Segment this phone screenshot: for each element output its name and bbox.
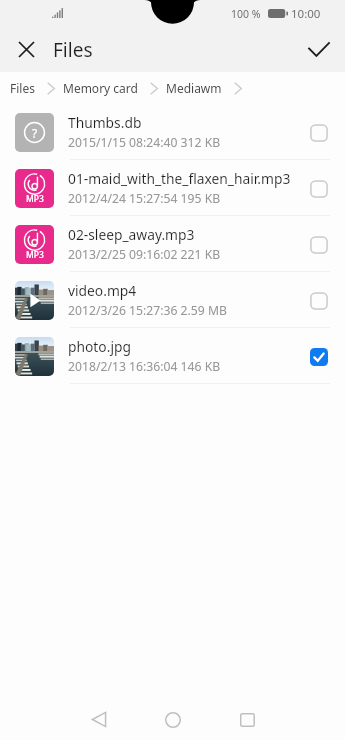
staticText: 2012/4/24 15:27:54 195 KB (68, 190, 221, 207)
staticText: 2018/2/13 16:36:04 146 KB (68, 358, 221, 375)
staticText: 2015/1/15 08:24:40 312 KB (68, 134, 221, 151)
staticText: 2013/2/25 09:16:02 221 KB (68, 246, 221, 263)
button[interactable]: photo.jpg (0, 328, 345, 384)
staticText: 10:00 (291, 6, 321, 22)
button[interactable]: Memory card (63, 80, 138, 96)
staticText: MP3 (26, 249, 44, 261)
button[interactable]: MP3 (0, 160, 345, 216)
staticText: photo.jpg (68, 337, 131, 356)
staticText: Files (53, 37, 93, 63)
button[interactable]: Confirm (300, 27, 337, 72)
staticText: 100 % (231, 7, 261, 21)
button[interactable]: video.mp4 (0, 272, 345, 328)
button[interactable]: Select (300, 278, 338, 323)
button[interactable]: ? (0, 104, 345, 160)
staticText: 2012/3/26 15:27:36 2.59 MB (68, 302, 227, 319)
button[interactable]: Select (300, 166, 338, 211)
staticText: video.mp4 (68, 281, 137, 300)
staticText: Thumbs.db (68, 113, 142, 132)
button[interactable]: MP3 (0, 216, 345, 272)
button[interactable]: Mediawm (166, 80, 222, 96)
button[interactable]: Select (300, 110, 338, 155)
button[interactable]: Close (8, 27, 45, 72)
staticText: 02-sleep_away.mp3 (68, 225, 195, 244)
button[interactable]: Select (300, 334, 338, 379)
button[interactable]: Select (300, 222, 338, 267)
staticText: ? (32, 125, 38, 141)
button[interactable]: Recents (210, 699, 284, 740)
staticText: 01-maid_with_the_flaxen_hair.mp3 (68, 169, 291, 188)
button[interactable]: Back (62, 699, 136, 740)
staticText: MP3 (26, 193, 44, 205)
button[interactable]: Home (136, 699, 210, 740)
button[interactable]: Files (10, 80, 35, 96)
